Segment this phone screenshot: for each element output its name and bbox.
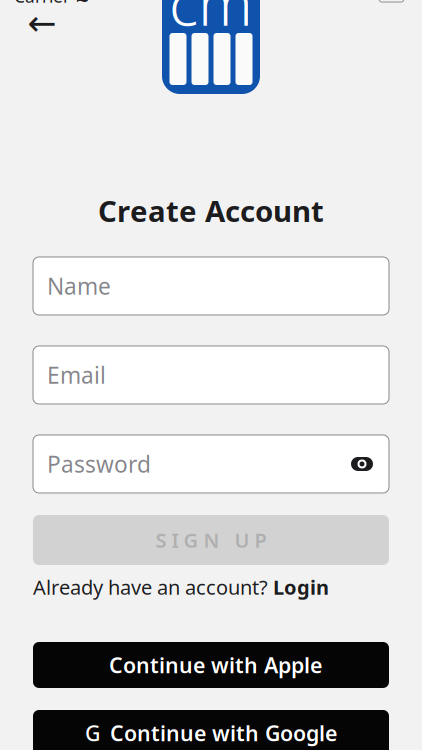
staticText: ≋ [75, 0, 90, 6]
staticText: Already have an account? [33, 574, 273, 600]
staticText: Create Account [98, 191, 324, 230]
staticText: ← [27, 3, 56, 43]
staticText: Login [273, 574, 329, 600]
staticText: S I G N U P [155, 527, 266, 553]
button[interactable]: Back [20, 1, 64, 45]
staticText: Carrier [14, 0, 70, 7]
staticText: cm [169, 0, 253, 43]
staticText: Continue with Google [110, 719, 337, 747]
staticText: Name [47, 271, 111, 301]
staticText: G [85, 719, 101, 747]
button[interactable]: S I G N U P [33, 515, 389, 565]
staticText: Continue with Apple [109, 651, 322, 679]
button[interactable]: Show password [349, 454, 375, 474]
button[interactable]: Already have an account? [33, 576, 389, 598]
staticText: Password [47, 449, 151, 479]
staticText: Email [47, 360, 106, 390]
button[interactable] [33, 642, 389, 688]
button[interactable]: G [33, 710, 389, 750]
